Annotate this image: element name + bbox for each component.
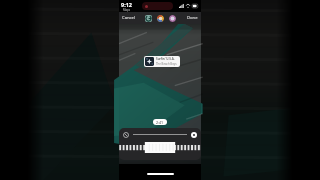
button[interactable]: Photos — [169, 15, 176, 22]
button[interactable]: 2:41 — [153, 119, 167, 125]
button[interactable]: Cancel — [119, 15, 136, 21]
button[interactable]: Volume — [191, 132, 197, 138]
staticText: The Beach Boys — [156, 62, 177, 66]
button[interactable]: Surfin' U.S.A. — [144, 56, 180, 67]
staticText: 2:41 — [156, 120, 164, 125]
staticText: 9:12 — [121, 1, 132, 8]
button[interactable] — [119, 142, 201, 155]
button[interactable]: Mute — [123, 132, 129, 138]
staticText: Surfin' U.S.A. — [156, 57, 175, 61]
staticText: Maps — [123, 8, 131, 12]
button[interactable]: Shortcuts — [145, 15, 152, 22]
button[interactable]: Chrome — [157, 15, 164, 22]
button[interactable]: Done — [187, 15, 201, 21]
